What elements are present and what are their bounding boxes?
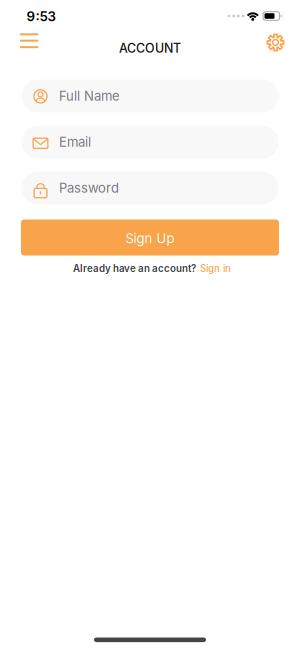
button[interactable]: Full Name (21, 79, 278, 112)
button[interactable]: Menu (16, 29, 42, 52)
button[interactable]: Password (21, 171, 278, 204)
staticText: ACCOUNT (119, 41, 181, 56)
staticText: Already have an account? (73, 263, 196, 274)
staticText: Password (59, 180, 119, 196)
staticText: Full Name (59, 88, 120, 104)
staticText: 9:53 (26, 8, 55, 24)
button[interactable]: Email (21, 125, 278, 158)
staticText: Sign Up (125, 231, 174, 246)
button[interactable]: Sign in (200, 263, 231, 274)
staticText: Email (59, 134, 91, 150)
button[interactable]: Sign Up (21, 219, 279, 255)
staticText: Sign in (200, 263, 231, 274)
button[interactable]: Settings (263, 30, 288, 55)
